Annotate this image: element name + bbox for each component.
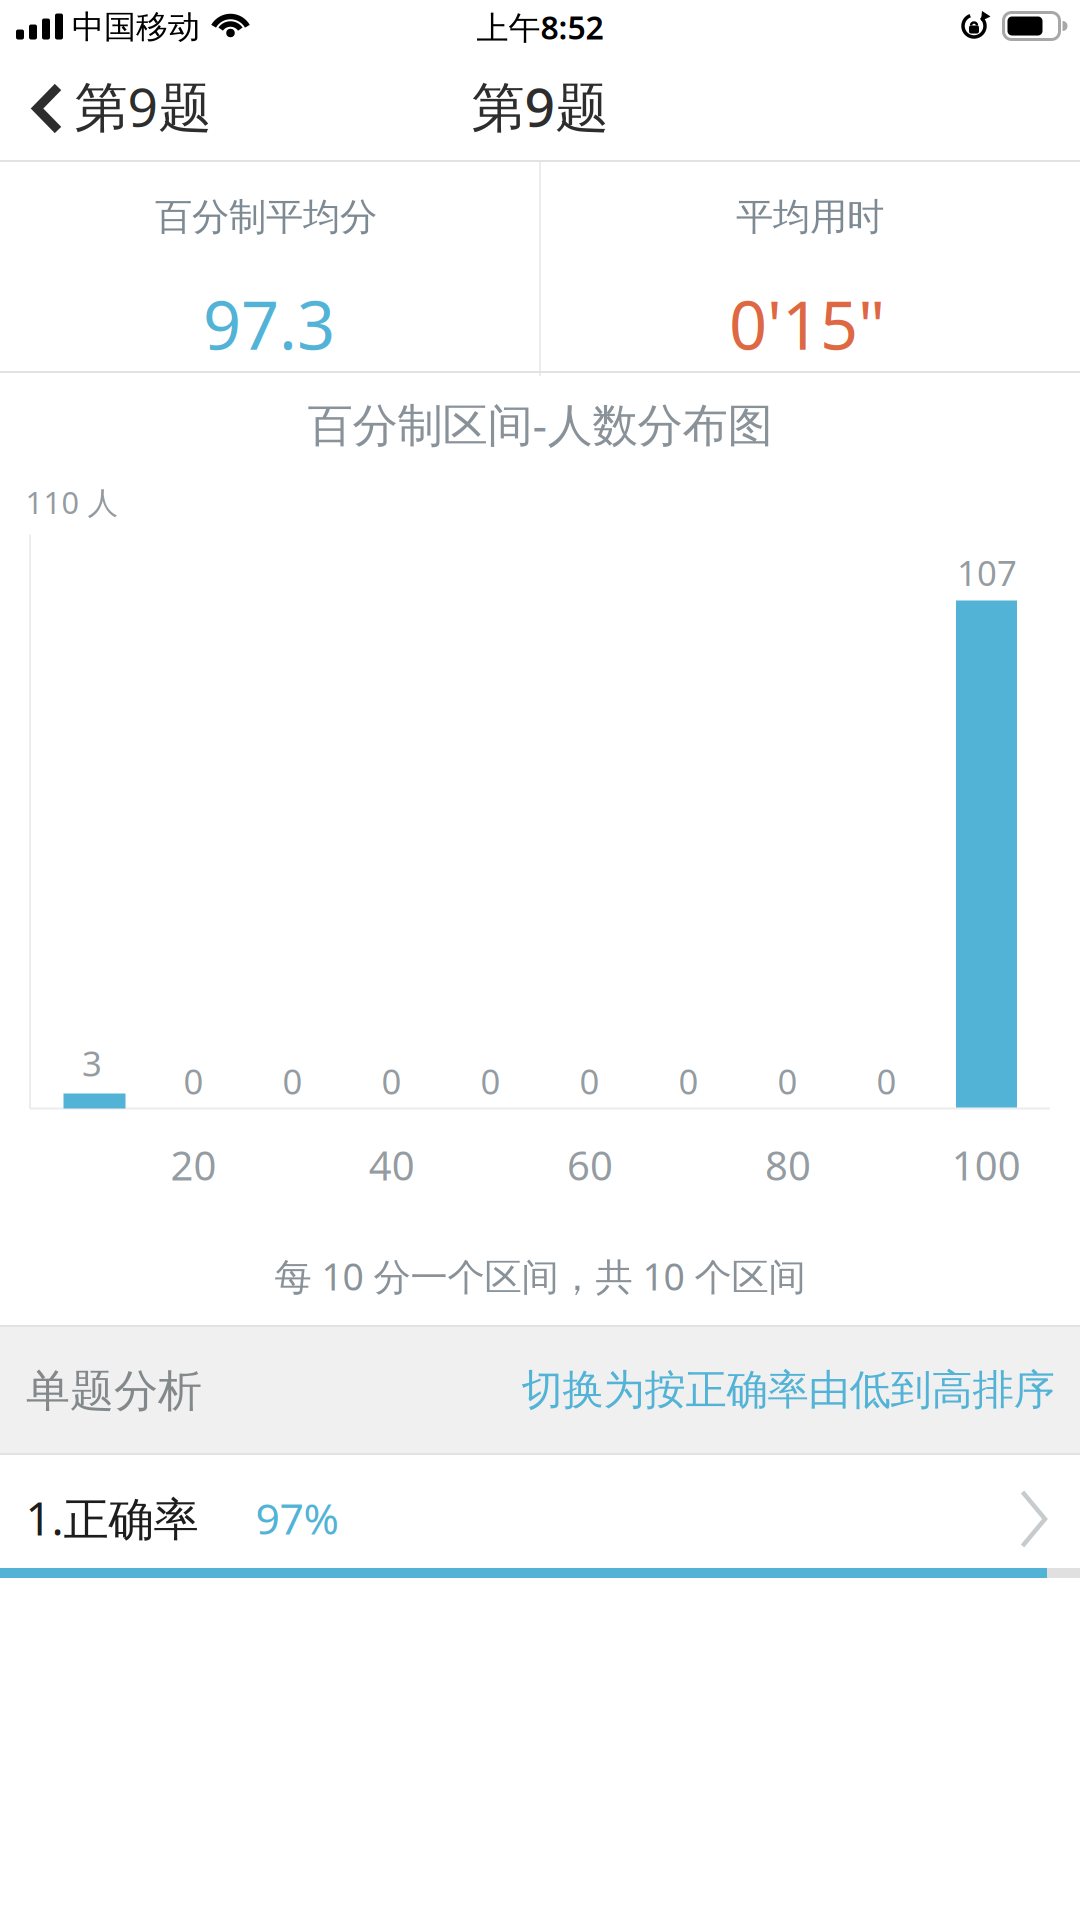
staticText: 110 人 [25,482,118,522]
staticText: 0 [876,1058,896,1104]
staticText: 0 [381,1058,401,1104]
staticText: 百分制平均分 [155,194,377,240]
staticText: 107 [957,549,1017,595]
staticText: 0 [480,1058,500,1104]
button[interactable]: 1.正确率 [0,1455,1080,1568]
staticText: 97.3 [203,280,335,368]
staticText: 20 [170,1138,216,1191]
staticText: 切换为按正确率由低到高排序 [521,1365,1054,1415]
staticText: 第9题 [74,71,211,141]
staticText: 40 [369,1138,415,1191]
staticText: 0 [282,1058,302,1104]
button[interactable]: 第9题 [20,62,220,154]
staticText: 3 [82,1040,102,1086]
staticText: 中国移动 [72,7,200,47]
staticText: 0 [678,1058,698,1104]
staticText: 0 [183,1058,203,1104]
staticText: 百分制区间-人数分布图 [307,394,772,454]
staticText: 第9题 [471,71,608,141]
staticText: 97% [255,1490,338,1546]
button[interactable]: 切换为按正确率由低到高排序 [488,1326,1080,1454]
staticText: 0'15" [729,280,885,368]
staticText: 100 [952,1138,1021,1191]
staticText: 0 [777,1058,797,1104]
staticText: 0 [579,1058,599,1104]
staticText: 单题分析 [26,1364,202,1418]
staticText: 上午8:52 [476,6,603,48]
staticText: 平均用时 [736,194,884,240]
staticText: 60 [567,1138,613,1191]
staticText: 1.正确率 [25,1488,198,1548]
staticText: 80 [765,1138,811,1191]
staticText: 每 10 分一个区间，共 10 个区间 [274,1251,805,1301]
